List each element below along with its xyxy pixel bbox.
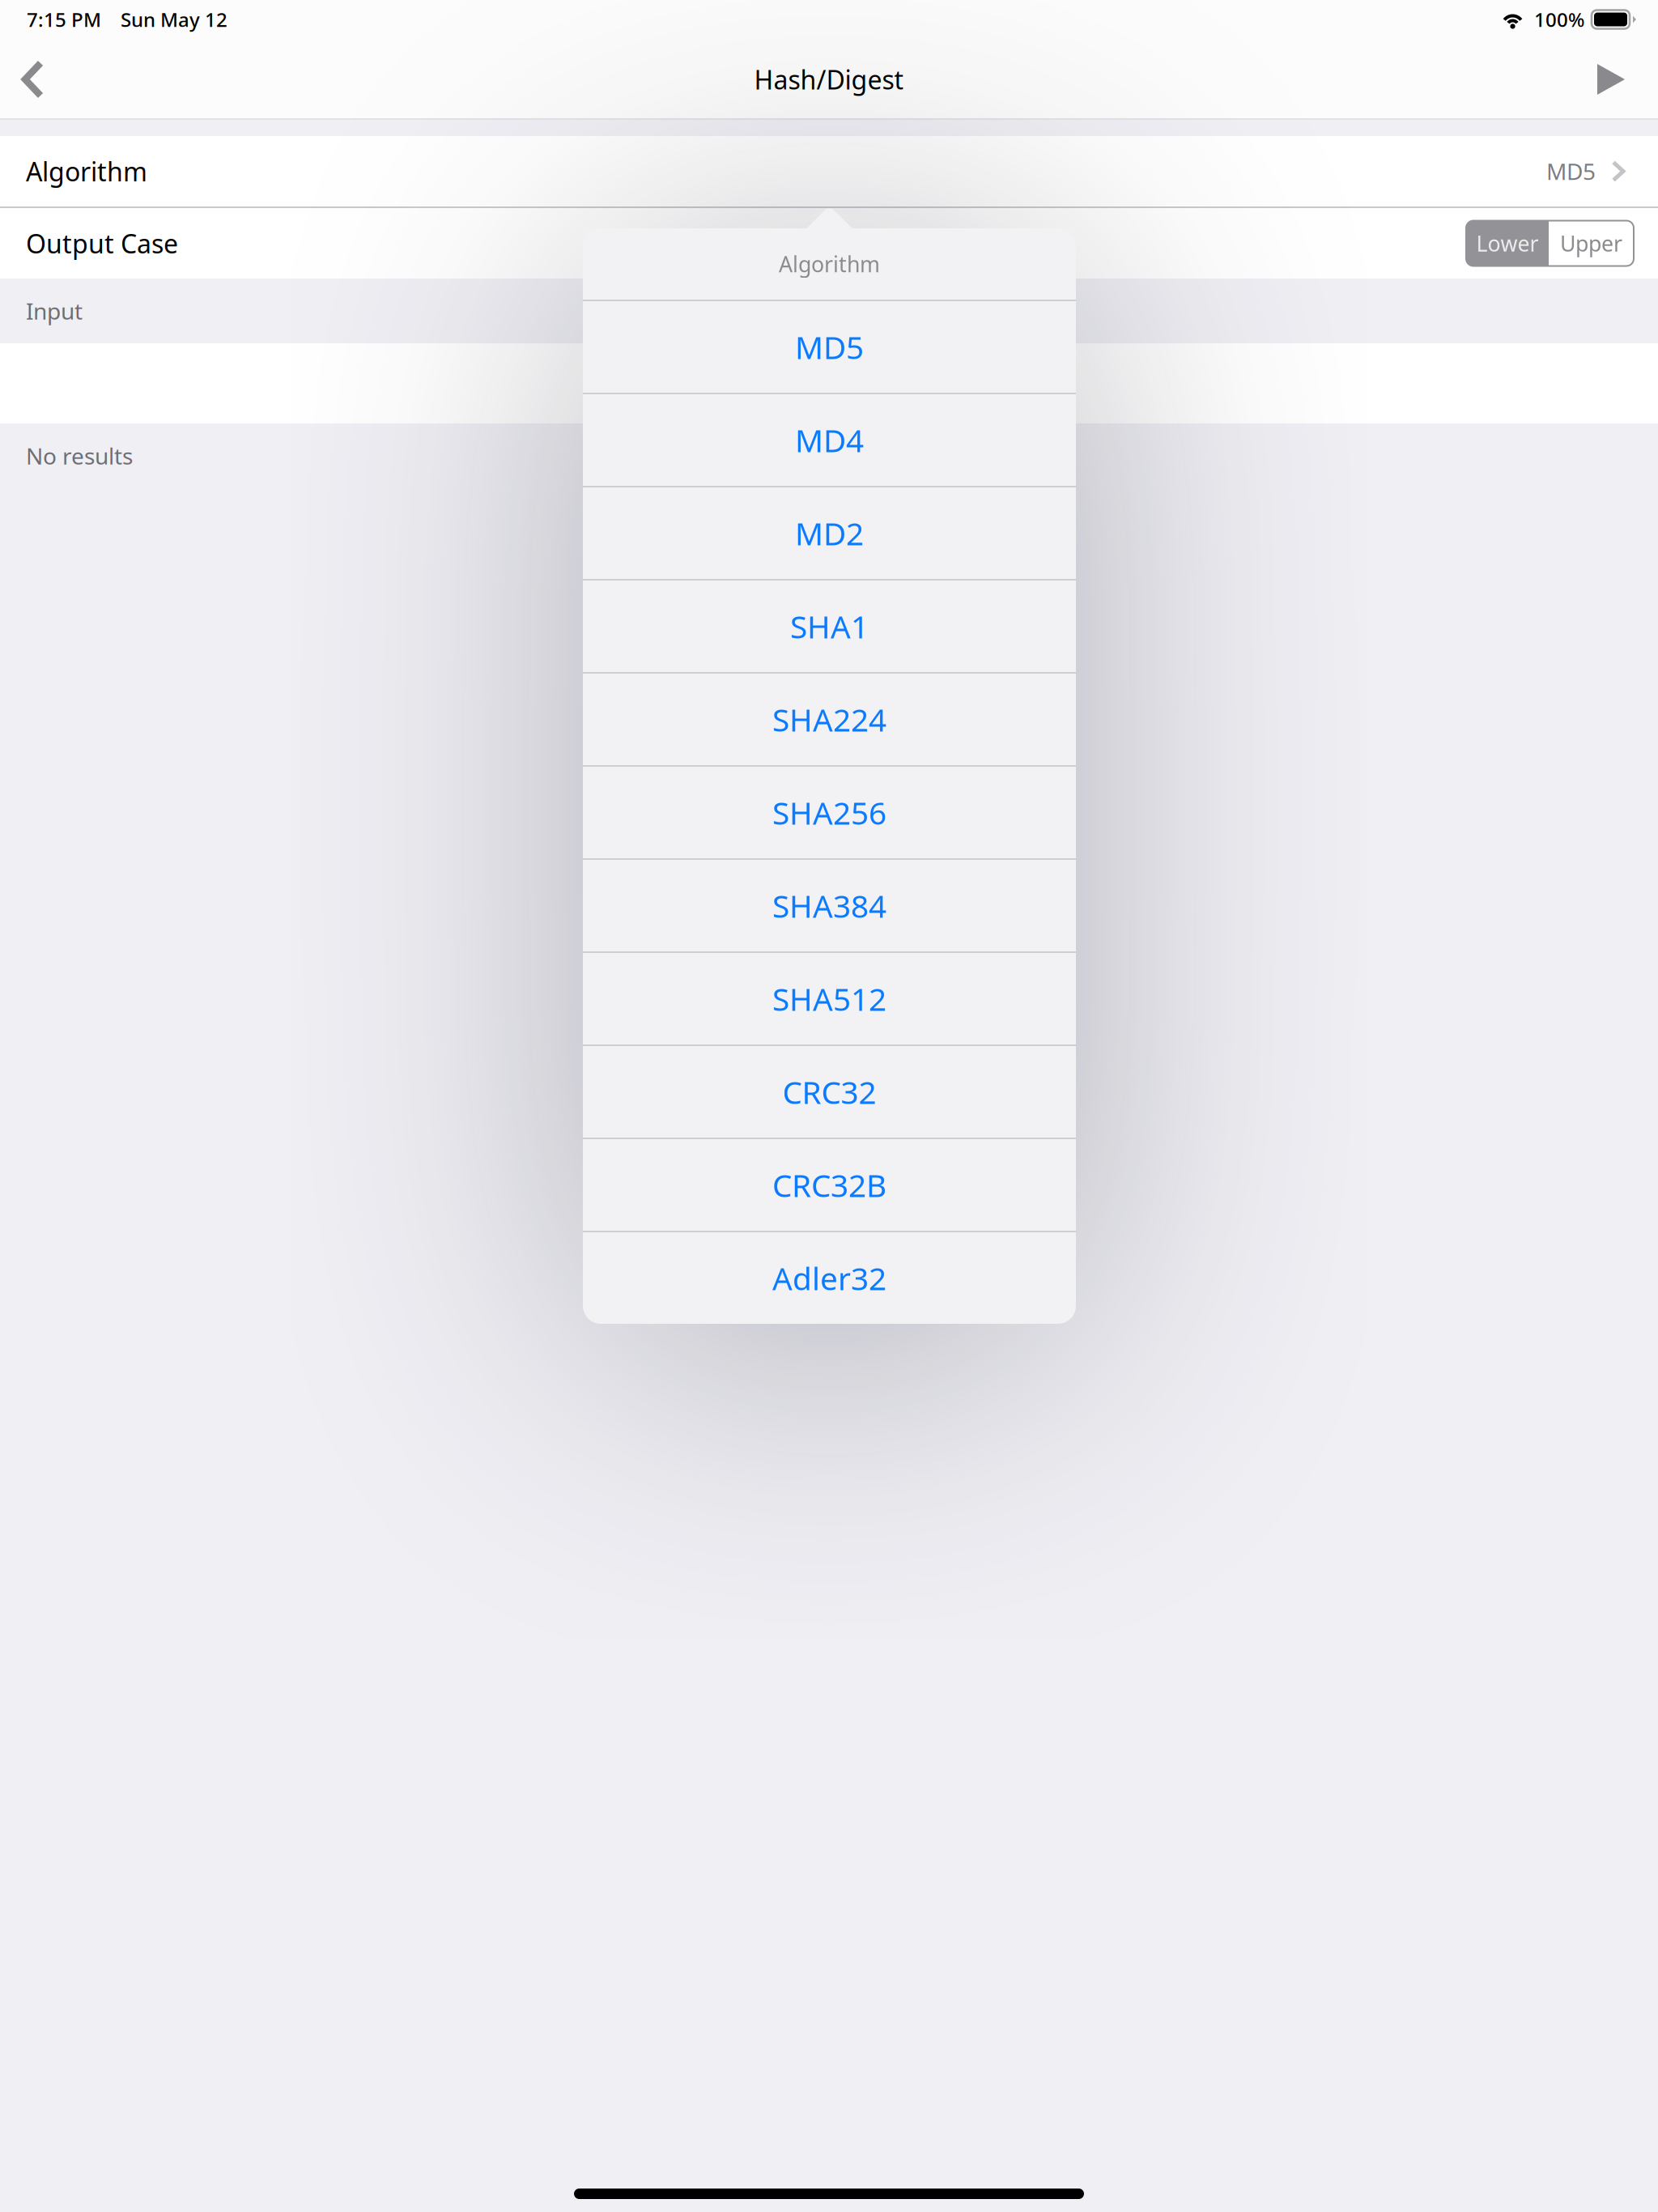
button[interactable]: Back (0, 39, 69, 120)
button[interactable]: Run (1572, 39, 1658, 120)
staticText: CRC32 (782, 1071, 876, 1113)
button[interactable]: SHA224 (583, 674, 1076, 765)
staticText: 7:15 PM (27, 7, 101, 32)
button[interactable]: SHA512 (583, 953, 1076, 1044)
staticText: Algorithm (26, 154, 147, 188)
staticText: Lower (1476, 229, 1539, 258)
staticText: MD5 (795, 326, 864, 368)
staticText: Sun May 12 (121, 7, 227, 32)
staticText: CRC32B (772, 1164, 886, 1206)
staticText: MD4 (795, 419, 864, 461)
button[interactable]: CRC32B (583, 1139, 1076, 1231)
button[interactable]: SHA1 (583, 581, 1076, 672)
button[interactable]: Algorithm (0, 136, 1658, 206)
staticText: Adler32 (772, 1257, 886, 1299)
staticText: SHA512 (772, 978, 886, 1019)
button[interactable]: CRC32 (583, 1046, 1076, 1138)
staticText: MD2 (795, 512, 864, 554)
button[interactable]: Adler32 (583, 1232, 1076, 1324)
staticText: SHA1 (790, 605, 869, 647)
button[interactable]: MD5 (583, 301, 1076, 393)
button[interactable]: MD4 (583, 394, 1076, 486)
staticText: Algorithm (779, 250, 880, 278)
button[interactable]: SHA256 (583, 767, 1076, 858)
button[interactable]: SHA384 (583, 860, 1076, 951)
button[interactable]: MD2 (583, 487, 1076, 579)
staticText: SHA256 (772, 792, 886, 833)
staticText: Hash/Digest (754, 62, 904, 97)
staticText: Upper (1560, 229, 1622, 258)
staticText: 100% (1534, 7, 1584, 32)
staticText: SHA384 (772, 885, 886, 926)
staticText: No results (26, 441, 133, 471)
button[interactable]: Lower (1466, 221, 1549, 266)
button[interactable]: Upper (1549, 221, 1634, 266)
staticText: Input (26, 296, 83, 326)
staticText: Output Case (26, 226, 178, 261)
staticText: MD5 (1546, 156, 1596, 186)
staticText: SHA224 (772, 699, 886, 740)
